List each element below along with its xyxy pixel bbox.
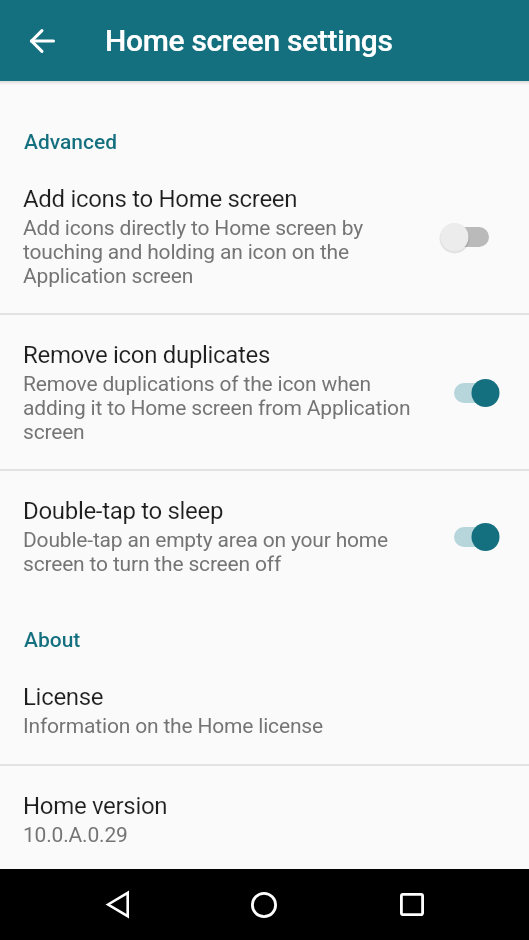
button[interactable]: Navigate up <box>12 11 72 71</box>
staticText: Home version <box>23 792 168 820</box>
staticText: Double-tap to sleep <box>23 497 224 525</box>
staticText: Information on the Home license <box>23 714 323 739</box>
staticText: 10.0.A.0.29 <box>23 823 128 844</box>
button[interactable]: On <box>424 369 505 417</box>
button[interactable]: Home version <box>0 766 529 869</box>
staticText: Remove icon duplicates <box>23 341 271 369</box>
button[interactable]: License <box>0 657 529 764</box>
button[interactable]: Double-tap to sleep <box>0 471 529 601</box>
button[interactable]: Remove icon duplicates <box>0 315 529 469</box>
staticText: Add icons to Home screen <box>23 185 298 213</box>
staticText: About <box>24 628 81 653</box>
staticText: Home screen settings <box>105 23 393 58</box>
button[interactable]: On <box>424 513 505 561</box>
button[interactable]: Back <box>87 869 147 940</box>
staticText: Advanced <box>24 130 118 155</box>
button[interactable]: Home <box>234 869 294 940</box>
staticText: Remove duplications of the icon when add… <box>23 372 424 444</box>
staticText: Add icons directly to Home screen by tou… <box>23 216 424 288</box>
button[interactable]: Recent apps <box>382 869 442 940</box>
button[interactable]: Off <box>424 213 505 261</box>
button[interactable]: Add icons to Home screen <box>0 159 529 313</box>
staticText: License <box>23 683 104 711</box>
staticText: Double-tap an empty area on your home sc… <box>23 528 424 576</box>
